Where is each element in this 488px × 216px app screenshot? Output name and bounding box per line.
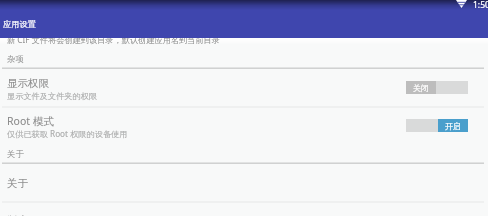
other: Wi-Fi [456, 0, 467, 8]
staticText: 显示权限 [7, 77, 49, 90]
staticText: 版本 [7, 214, 28, 216]
staticText: 1:50 [473, 0, 488, 11]
staticText: 关于 [7, 177, 28, 190]
staticText: 开启 [445, 121, 461, 131]
staticText: 仅供已获取 Root 权限的设备使用 [7, 128, 128, 139]
button[interactable]: Enabled toggle [406, 119, 468, 132]
staticText: 显示文件及文件夹的权限 [7, 91, 98, 101]
staticText: 关闭 [413, 83, 429, 93]
staticText: 杂项 [7, 54, 24, 65]
staticText: Root 模式 [7, 114, 54, 128]
button[interactable]: Disabled toggle [406, 81, 468, 94]
button[interactable]: 显示权限 [0, 69, 488, 107]
staticText: 新 CIF 文件将会创建到该目录，默认创建应用名到当前目录 [7, 34, 220, 45]
staticText: 应用设置 [3, 19, 36, 29]
button[interactable]: Root 模式 [0, 108, 488, 146]
staticText: 关于 [7, 149, 24, 160]
button[interactable]: 关于 [0, 164, 488, 202]
